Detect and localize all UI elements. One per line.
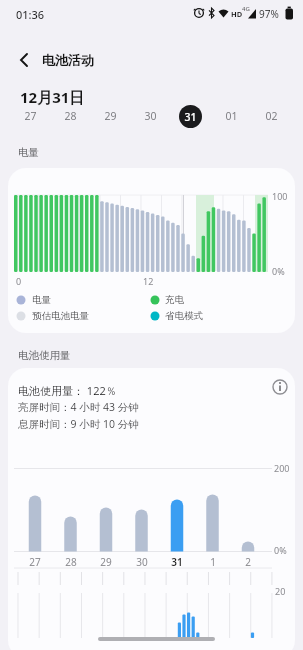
staticText: 97% bbox=[259, 7, 279, 21]
staticText: 200 bbox=[274, 462, 290, 474]
staticText: 31 bbox=[184, 110, 197, 124]
staticText: 100 bbox=[272, 190, 288, 202]
staticText: 27 bbox=[24, 109, 37, 123]
staticText: HD bbox=[231, 9, 243, 19]
button[interactable]: 27 bbox=[16, 105, 44, 127]
staticText: 12月31日 bbox=[20, 87, 85, 107]
staticText: 1 bbox=[210, 555, 216, 569]
staticText: 电池使用量 bbox=[18, 349, 71, 362]
staticText: 0 bbox=[16, 275, 22, 287]
staticText: 4G bbox=[242, 5, 250, 13]
staticText: 2 bbox=[245, 555, 251, 569]
staticText: 充电 bbox=[165, 294, 184, 306]
button[interactable] bbox=[8, 368, 295, 650]
staticText: 电量 bbox=[32, 294, 51, 306]
staticText: 28 bbox=[64, 109, 77, 123]
staticText: 0% bbox=[272, 265, 285, 277]
staticText: 01:36 bbox=[16, 7, 45, 22]
staticText: 27 bbox=[29, 555, 41, 569]
button[interactable]: 02 bbox=[257, 105, 285, 127]
staticText: 20 bbox=[275, 585, 286, 597]
button[interactable] bbox=[268, 375, 292, 399]
staticText: 31 bbox=[171, 555, 183, 569]
staticText: 预估电池电量 bbox=[32, 310, 89, 322]
staticText: 省电模式 bbox=[165, 310, 203, 322]
staticText: 息屏时间：9 小时 10 分钟 bbox=[18, 417, 139, 431]
staticText: 12 bbox=[143, 275, 154, 287]
staticText: 30 bbox=[136, 555, 148, 569]
staticText: 电量 bbox=[18, 146, 39, 159]
staticText: 30 bbox=[144, 109, 157, 123]
staticText: 29 bbox=[104, 109, 117, 123]
staticText: 02 bbox=[265, 109, 278, 123]
staticText: 0% bbox=[274, 544, 287, 556]
button[interactable]: 28 bbox=[56, 105, 84, 127]
staticText: 01 bbox=[225, 109, 238, 123]
staticText: 28 bbox=[65, 555, 77, 569]
button[interactable] bbox=[10, 46, 40, 74]
staticText: 29 bbox=[100, 555, 112, 569]
button[interactable]: 29 bbox=[96, 105, 124, 127]
button[interactable]: 31 bbox=[179, 105, 202, 128]
staticText: 电池活动 bbox=[42, 52, 94, 68]
button[interactable]: 01 bbox=[217, 105, 245, 127]
staticText: 亮屏时间：4 小时 43 分钟 bbox=[18, 400, 139, 414]
button[interactable]: 30 bbox=[136, 105, 164, 127]
staticText: 电池使用量： 122％ bbox=[18, 383, 117, 398]
